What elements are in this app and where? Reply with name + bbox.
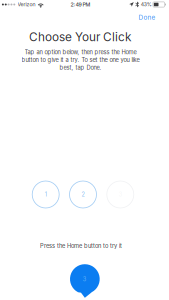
staticText: 3 xyxy=(83,276,87,282)
staticText: Tap an option below, then press the Home… xyxy=(21,49,139,71)
staticText: Verizon xyxy=(18,1,36,8)
button[interactable]: Done xyxy=(132,9,161,26)
button[interactable]: 3 xyxy=(107,181,134,208)
button[interactable]: 1 xyxy=(32,181,59,208)
staticText: Choose Your Click xyxy=(29,30,131,44)
staticText: 43% xyxy=(141,1,152,8)
staticText: Press the Home button to try it xyxy=(40,242,122,249)
staticText: 2:49 PM xyxy=(70,1,90,8)
staticText: Done xyxy=(138,13,155,21)
staticText: 1 xyxy=(45,191,47,198)
staticText: 2 xyxy=(81,191,84,198)
button[interactable]: 2 xyxy=(69,181,96,208)
